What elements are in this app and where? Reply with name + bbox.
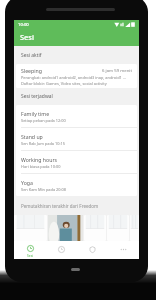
staticText: Pemutakhiran terakhir dari Freedom: [21, 203, 99, 209]
staticText: Setiap pekan pada 12:00: [21, 118, 66, 123]
staticText: 10:00: [18, 22, 29, 28]
button[interactable]: Blokir: [77, 241, 108, 259]
staticText: Daftar blokir: Games, Video sites, socia…: [21, 81, 107, 86]
button[interactable]: Stand up: [16, 128, 137, 150]
staticText: Stand up: [21, 133, 43, 140]
button[interactable]: Foto artikel: [48, 215, 83, 241]
staticText: Sesi: [20, 32, 34, 42]
button[interactable]: Artikel: [84, 215, 106, 241]
staticText: Sleeping: [21, 67, 42, 74]
button[interactable]: Sesi: [14, 241, 46, 259]
staticText: 6 jam 59 menit: [102, 67, 133, 73]
staticText: Working hours: [21, 156, 58, 163]
staticText: Sen Rab Jum pada 10:15: [21, 141, 65, 146]
staticText: Hari biasa pada 10:00: [21, 164, 61, 169]
staticText: Yoga: [21, 179, 33, 186]
button[interactable]: Artikel: [130, 215, 139, 241]
button[interactable]: Family time: [16, 105, 137, 127]
button[interactable]: Sleeping: [16, 64, 137, 88]
button[interactable]: Lainnya: [108, 241, 139, 259]
button[interactable]: Yoga: [16, 174, 137, 196]
button[interactable]: Artikel: [107, 215, 129, 241]
button[interactable]: Working hours: [16, 151, 137, 173]
staticText: Family time: [21, 110, 50, 117]
staticText: Sesi aktif: [21, 52, 42, 59]
staticText: Perangkat: android1 android2, android3 i…: [21, 75, 126, 80]
button[interactable]: Artikel: [14, 215, 47, 241]
staticText: Sen Kam Min pada 20:08: [21, 187, 67, 192]
staticText: Sesi: [27, 253, 34, 257]
button[interactable]: Timer: [46, 241, 77, 259]
staticText: Sesi terjadwal: [21, 93, 53, 100]
